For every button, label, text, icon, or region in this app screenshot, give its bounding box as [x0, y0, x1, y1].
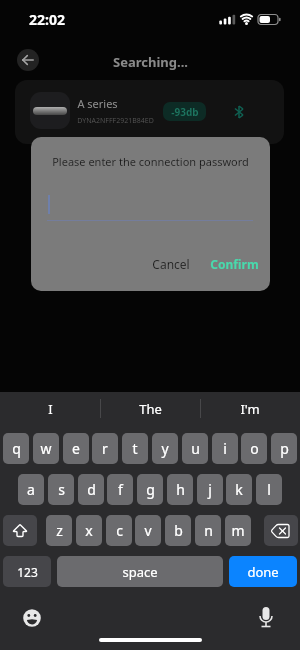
button[interactable]: n — [195, 515, 221, 546]
button[interactable]: u — [182, 433, 208, 464]
button[interactable]: z — [46, 515, 72, 546]
button[interactable]: l — [256, 474, 282, 505]
staticText: j — [208, 480, 212, 499]
staticText: f — [118, 480, 123, 499]
staticText: g — [146, 480, 155, 499]
staticText: e — [72, 439, 80, 458]
button[interactable]: e — [63, 433, 89, 464]
button[interactable] — [18, 604, 46, 632]
button[interactable]: o — [241, 433, 267, 464]
staticText: 22:02 — [29, 10, 65, 29]
button[interactable]: r — [92, 433, 118, 464]
staticText: q — [12, 439, 21, 458]
staticText: x — [85, 521, 93, 540]
staticText: A series — [77, 96, 118, 111]
button[interactable]: g — [137, 474, 163, 505]
staticText: Confirm — [210, 256, 259, 272]
staticText: b — [174, 521, 183, 540]
button[interactable]: s — [48, 474, 74, 505]
button[interactable]: d — [78, 474, 104, 505]
button[interactable]: f — [107, 474, 133, 505]
staticText: a — [27, 480, 35, 499]
button[interactable]: k — [226, 474, 252, 505]
button[interactable]: x — [76, 515, 102, 546]
button[interactable]: m — [225, 515, 251, 546]
button[interactable]: v — [135, 515, 161, 546]
staticText: c — [116, 521, 123, 540]
staticText: z — [56, 521, 63, 540]
staticText: done — [247, 563, 279, 581]
button[interactable]: I'm — [200, 392, 300, 425]
button[interactable]: i — [212, 433, 238, 464]
button[interactable]: b — [165, 515, 191, 546]
staticText: d — [87, 480, 96, 499]
button[interactable]: done — [229, 556, 297, 587]
button[interactable]: p — [271, 433, 297, 464]
staticText: h — [176, 480, 185, 499]
staticText: p — [280, 439, 289, 458]
button[interactable]: I — [0, 392, 100, 425]
staticText: r — [102, 439, 108, 458]
staticText: I — [48, 400, 53, 418]
staticText: Cancel — [152, 256, 190, 272]
staticText: The — [139, 400, 162, 418]
staticText: t — [132, 439, 138, 458]
staticText: s — [58, 480, 65, 499]
staticText: space — [122, 563, 158, 581]
button[interactable] — [252, 605, 282, 635]
button[interactable]: Cancel — [141, 253, 201, 275]
staticText: l — [267, 480, 271, 499]
button[interactable]: Confirm — [203, 253, 265, 275]
staticText: n — [204, 521, 213, 540]
button[interactable]: y — [152, 433, 178, 464]
button[interactable]: t — [122, 433, 148, 464]
button[interactable]: h — [167, 474, 193, 505]
staticText: y — [161, 439, 169, 458]
button[interactable]: space — [57, 556, 223, 587]
staticText: u — [191, 439, 200, 458]
staticText: Please enter the connection password — [52, 154, 249, 169]
button[interactable]: The — [100, 392, 200, 425]
button[interactable]: j — [197, 474, 223, 505]
staticText: i — [223, 439, 227, 458]
button[interactable]: 123 — [3, 556, 51, 587]
button[interactable]: w — [33, 433, 59, 464]
button[interactable]: c — [106, 515, 132, 546]
staticText: o — [250, 439, 259, 458]
staticText: Searching... — [113, 53, 188, 71]
staticText: m — [231, 521, 245, 540]
button[interactable] — [264, 515, 298, 546]
button[interactable]: q — [3, 433, 29, 464]
button[interactable]: a — [18, 474, 44, 505]
staticText: I'm — [240, 400, 260, 418]
staticText: -93db — [171, 105, 199, 119]
button[interactable] — [17, 49, 39, 71]
button[interactable] — [3, 515, 37, 546]
staticText: DYNA2NFFF2921B84ED — [77, 116, 154, 126]
staticText: k — [235, 480, 243, 499]
staticText: v — [144, 521, 152, 540]
button[interactable]: A series — [15, 80, 284, 144]
staticText: 123 — [17, 564, 38, 580]
staticText: w — [40, 439, 52, 458]
